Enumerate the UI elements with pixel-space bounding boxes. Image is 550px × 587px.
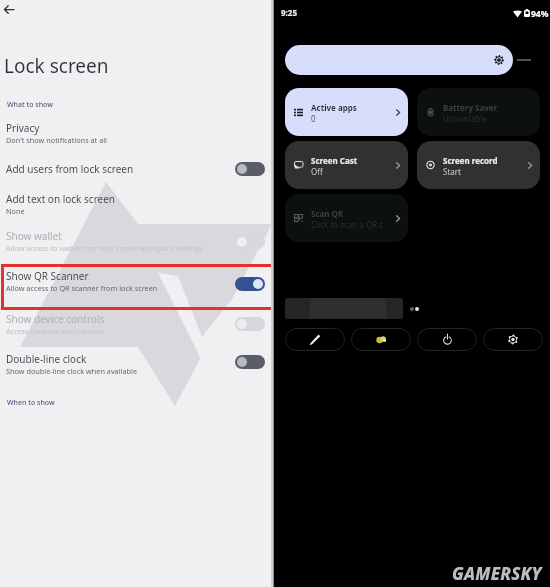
button[interactable]: Settings [483, 328, 543, 351]
button[interactable]: Battery Saver [417, 88, 540, 136]
button[interactable] [0, 114, 274, 152]
staticText: Screen Cast [311, 155, 401, 166]
staticText: What to show [7, 100, 53, 110]
staticText: Start [443, 166, 517, 177]
staticText: Screen record [443, 155, 533, 166]
staticText: Off [311, 166, 385, 177]
button[interactable]: Toggle [235, 235, 265, 249]
staticText: Show device controls [6, 312, 105, 326]
button[interactable]: Screen record [417, 141, 540, 189]
staticText: Show QR Scanner [6, 269, 89, 283]
button[interactable]: Toggle [235, 355, 265, 369]
staticText: GAMERSKY [452, 562, 542, 585]
staticText: Lock screen [4, 53, 109, 79]
button[interactable]: Quick settings [492, 53, 506, 67]
staticText: Double-line clock [6, 352, 87, 366]
button[interactable]: User profile [351, 328, 411, 351]
button[interactable] [0, 155, 274, 181]
button[interactable] [0, 262, 274, 300]
staticText: Click to scan a QR c [311, 219, 385, 230]
staticText: 0 [311, 113, 385, 124]
staticText: Battery Saver [443, 102, 533, 113]
staticText: Allow access to wallet from lock screen … [6, 243, 203, 253]
button[interactable]: Toggle [235, 277, 265, 291]
staticText: Show wallet [6, 229, 62, 243]
staticText: Unavailable [443, 113, 517, 124]
button[interactable] [0, 185, 274, 223]
staticText: When to show [7, 398, 55, 408]
staticText: None [6, 206, 25, 216]
staticText: 9:25 [281, 7, 297, 18]
staticText: Add text on lock screen [6, 192, 116, 206]
button[interactable]: Power [417, 328, 477, 351]
button[interactable]: Back [0, 0, 19, 19]
button[interactable] [0, 222, 274, 260]
staticText: Scan QR [311, 208, 401, 219]
button[interactable]: Quick settings [285, 45, 513, 75]
button[interactable]: Toggle [235, 317, 265, 331]
staticText: Privacy [6, 121, 40, 135]
button[interactable] [0, 345, 274, 383]
staticText: Access controls when locked [6, 326, 104, 336]
staticText: Show double-line clock when available [6, 366, 138, 376]
staticText: Don't show notifications at all [6, 135, 108, 145]
button[interactable]: Toggle [235, 162, 265, 176]
button[interactable]: Active apps [285, 88, 408, 136]
staticText: Allow access to QR scanner from lock scr… [6, 283, 158, 293]
button[interactable] [0, 305, 274, 343]
button[interactable]: Scan QR [285, 194, 408, 242]
staticText: Add users from lock screen [6, 162, 134, 176]
staticText: Active apps [311, 102, 401, 113]
button[interactable]: Edit [285, 328, 345, 351]
staticText: 94% [531, 8, 549, 20]
button[interactable]: Screen Cast [285, 141, 408, 189]
